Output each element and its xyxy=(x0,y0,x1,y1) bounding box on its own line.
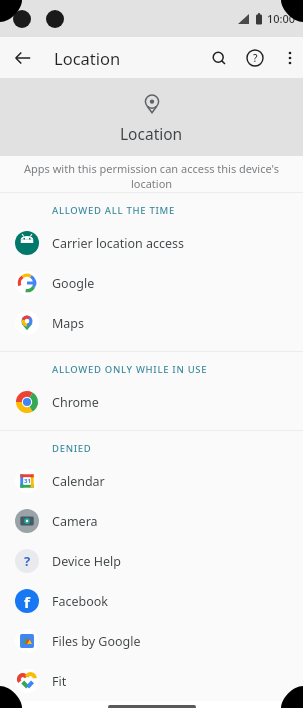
staticText: Device Help xyxy=(52,553,122,570)
staticText: 31 xyxy=(24,477,31,485)
staticText: Camera xyxy=(52,513,98,530)
staticText: ALLOWED ONLY WHILE IN USE xyxy=(52,363,208,376)
button[interactable]: Help xyxy=(242,45,268,71)
button[interactable]: Fit xyxy=(0,661,303,701)
staticText: Chrome xyxy=(52,394,99,411)
button[interactable]: More options xyxy=(278,46,302,70)
staticText: 10:00 xyxy=(267,11,296,26)
staticText: ? xyxy=(24,552,31,570)
button[interactable]: f xyxy=(0,581,303,621)
staticText: Google xyxy=(52,275,95,292)
button[interactable]: Files by Google xyxy=(0,621,303,661)
button[interactable]: Back xyxy=(8,43,38,73)
staticText: Carrier location access xyxy=(52,235,185,252)
button[interactable]: Maps xyxy=(0,303,303,343)
staticText: Maps xyxy=(52,315,85,332)
staticText: Location xyxy=(120,123,183,144)
staticText: Facebook xyxy=(52,593,109,610)
staticText: Files by Google xyxy=(52,633,141,650)
button[interactable]: Camera xyxy=(0,501,303,541)
staticText: f xyxy=(24,592,30,612)
staticText: ALLOWED ALL THE TIME xyxy=(52,204,175,217)
button[interactable]: Carrier location access xyxy=(0,223,303,263)
staticText: Apps with this permission can access thi… xyxy=(18,161,285,191)
staticText: DENIED xyxy=(52,442,92,455)
staticText: Location xyxy=(54,47,121,69)
button[interactable]: Chrome xyxy=(0,382,303,422)
staticText: Calendar xyxy=(52,473,105,490)
button[interactable]: Google xyxy=(0,263,303,303)
staticText: ? xyxy=(253,51,258,65)
button[interactable]: Search xyxy=(206,45,232,71)
button[interactable]: ? xyxy=(0,541,303,581)
button[interactable]: 31 xyxy=(0,461,303,501)
staticText: Fit xyxy=(52,673,67,690)
